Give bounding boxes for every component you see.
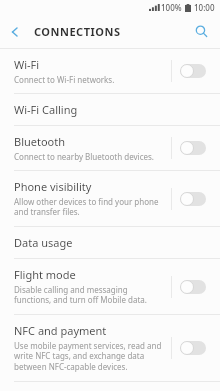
button[interactable]: Bluetooth switch [172, 134, 214, 162]
button[interactable]: Bluetooth [0, 126, 220, 170]
button[interactable]: Flight mode [0, 259, 220, 314]
button[interactable]: Back [0, 17, 30, 47]
staticText: Phone visibility [14, 179, 92, 194]
staticText: Data usage [14, 235, 73, 250]
button[interactable]: Wi-Fi switch [172, 57, 214, 85]
button[interactable]: NFC and payment [0, 315, 220, 381]
button[interactable]: Data usage [0, 227, 220, 258]
staticText: Connect to nearby Bluetooth devices. [14, 151, 155, 162]
staticText: Allow other devices to find your phone a… [14, 196, 163, 218]
button[interactable]: Flight mode switch [172, 273, 214, 301]
button[interactable]: Wi-Fi Calling [0, 94, 220, 125]
button[interactable]: Phone visibility [0, 171, 220, 226]
staticText: CONNECTIONS [34, 24, 121, 39]
staticText: Wi-Fi [14, 57, 40, 72]
staticText: Disable calling and messaging functions,… [14, 284, 163, 306]
staticText: Wi-Fi Calling [14, 102, 78, 117]
button[interactable]: Wi-Fi [0, 49, 220, 93]
staticText: 100% [161, 2, 182, 13]
button[interactable]: NFC and payment switch [172, 334, 214, 362]
staticText: NFC and payment [14, 323, 107, 338]
staticText: Flight mode [14, 267, 76, 282]
staticText: Bluetooth [14, 134, 66, 149]
staticText: Use mobile payment services, read and wr… [14, 340, 163, 373]
button[interactable]: Phone visibility switch [172, 185, 214, 213]
button[interactable]: Search [185, 15, 218, 48]
staticText: 10:00 [194, 2, 215, 13]
staticText: Connect to Wi-Fi networks. [14, 74, 115, 85]
